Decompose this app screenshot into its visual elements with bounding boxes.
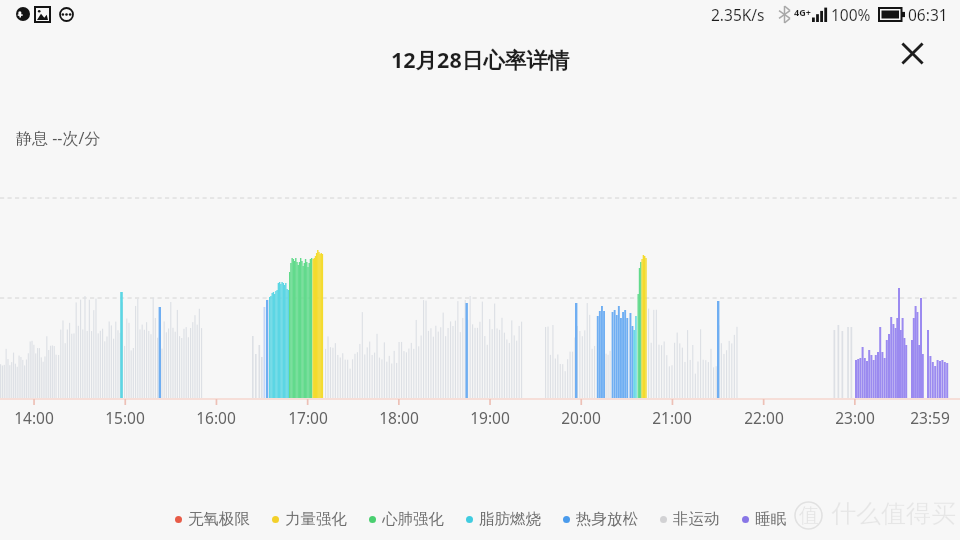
staticText: 什么值得买 [831,498,956,529]
staticText: 22:00 [734,407,794,428]
staticText: 14:00 [4,407,64,428]
staticText: 热身放松 [576,509,638,529]
staticText: 23:59 [900,407,960,428]
button[interactable]: 心肺强化 [369,509,444,529]
button[interactable]: 力量强化 [272,509,347,529]
staticText: 心肺强化 [382,509,444,529]
button[interactable]: 睡眠 [742,509,786,529]
staticText: 12月28日心率详情 [391,45,570,74]
staticText: 23:00 [825,407,885,428]
button[interactable]: 12月28日心率详情 [391,45,570,74]
staticText: 21:00 [642,407,702,428]
button[interactable]: 无氧极限 [175,509,250,529]
staticText: 睡眠 [755,509,786,529]
button[interactable]: 非运动 [660,509,720,529]
staticText: 19:00 [460,407,520,428]
staticText: 4G+ [794,6,811,18]
staticText: 静息 --次/分 [16,127,101,149]
button[interactable]: 静息 --次/分 [16,127,101,149]
staticText: 脂肪燃烧 [479,509,541,529]
staticText: 15:00 [95,407,155,428]
staticText: 非运动 [673,509,720,529]
staticText: 17:00 [278,407,338,428]
staticText: 100% [831,4,871,25]
staticText: 力量强化 [285,509,347,529]
staticText: 16:00 [186,407,246,428]
staticText: 18:00 [369,407,429,428]
staticText: 06:31 [908,4,948,25]
staticText: 无氧极限 [188,509,250,529]
button[interactable]: Close [890,31,935,76]
staticText: 20:00 [551,407,611,428]
staticText: 值 [799,503,819,528]
staticText: 2.35K/s [711,4,765,25]
button[interactable]: 热身放松 [563,509,638,529]
button[interactable]: 脂肪燃烧 [466,509,541,529]
